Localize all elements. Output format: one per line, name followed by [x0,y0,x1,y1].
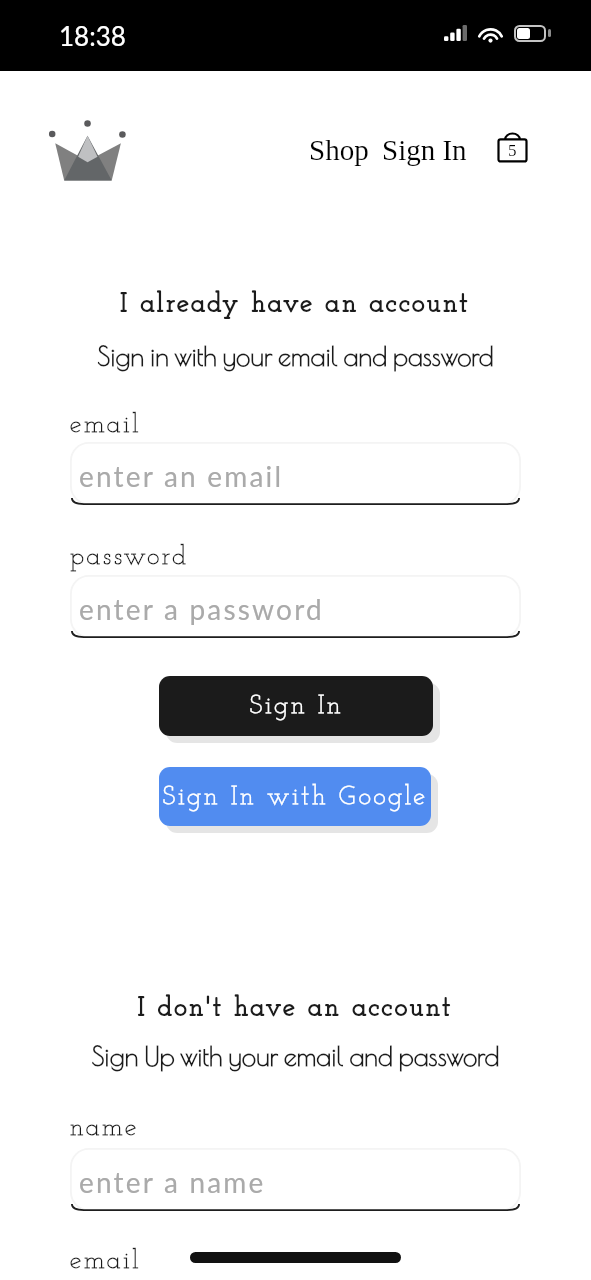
staticText: Sign In [249,693,344,719]
button[interactable]: enter an email [70,442,521,505]
staticText: password [70,544,189,570]
button[interactable]: Sign In [159,676,433,736]
button[interactable]: Sign In with Google [159,767,431,826]
staticText: Sign Up with your email and password [0,1041,591,1071]
staticText: email [70,1248,142,1274]
button[interactable]: Shop [309,128,369,166]
staticText: I already have an account [0,291,591,317]
button[interactable]: Shopping bag, 5 items [495,128,530,166]
staticText: enter a password [79,592,324,626]
staticText: I don't have an account [0,995,591,1021]
button[interactable]: Sign In [382,128,467,166]
staticText: I don't have an account [0,995,591,1021]
staticText: 5 [508,141,517,160]
staticText: enter an email [79,459,284,493]
staticText: email [70,412,142,438]
button[interactable]: enter a name [70,1148,521,1211]
staticText: Sign in with your email and password [0,341,591,371]
staticText: 18:38 [59,20,126,51]
staticText: name [70,1115,139,1141]
staticText: Sign In with Google [162,784,428,810]
staticText: I already have an account [0,291,591,317]
staticText: enter a name [79,1165,266,1199]
button[interactable]: enter a password [70,575,521,638]
